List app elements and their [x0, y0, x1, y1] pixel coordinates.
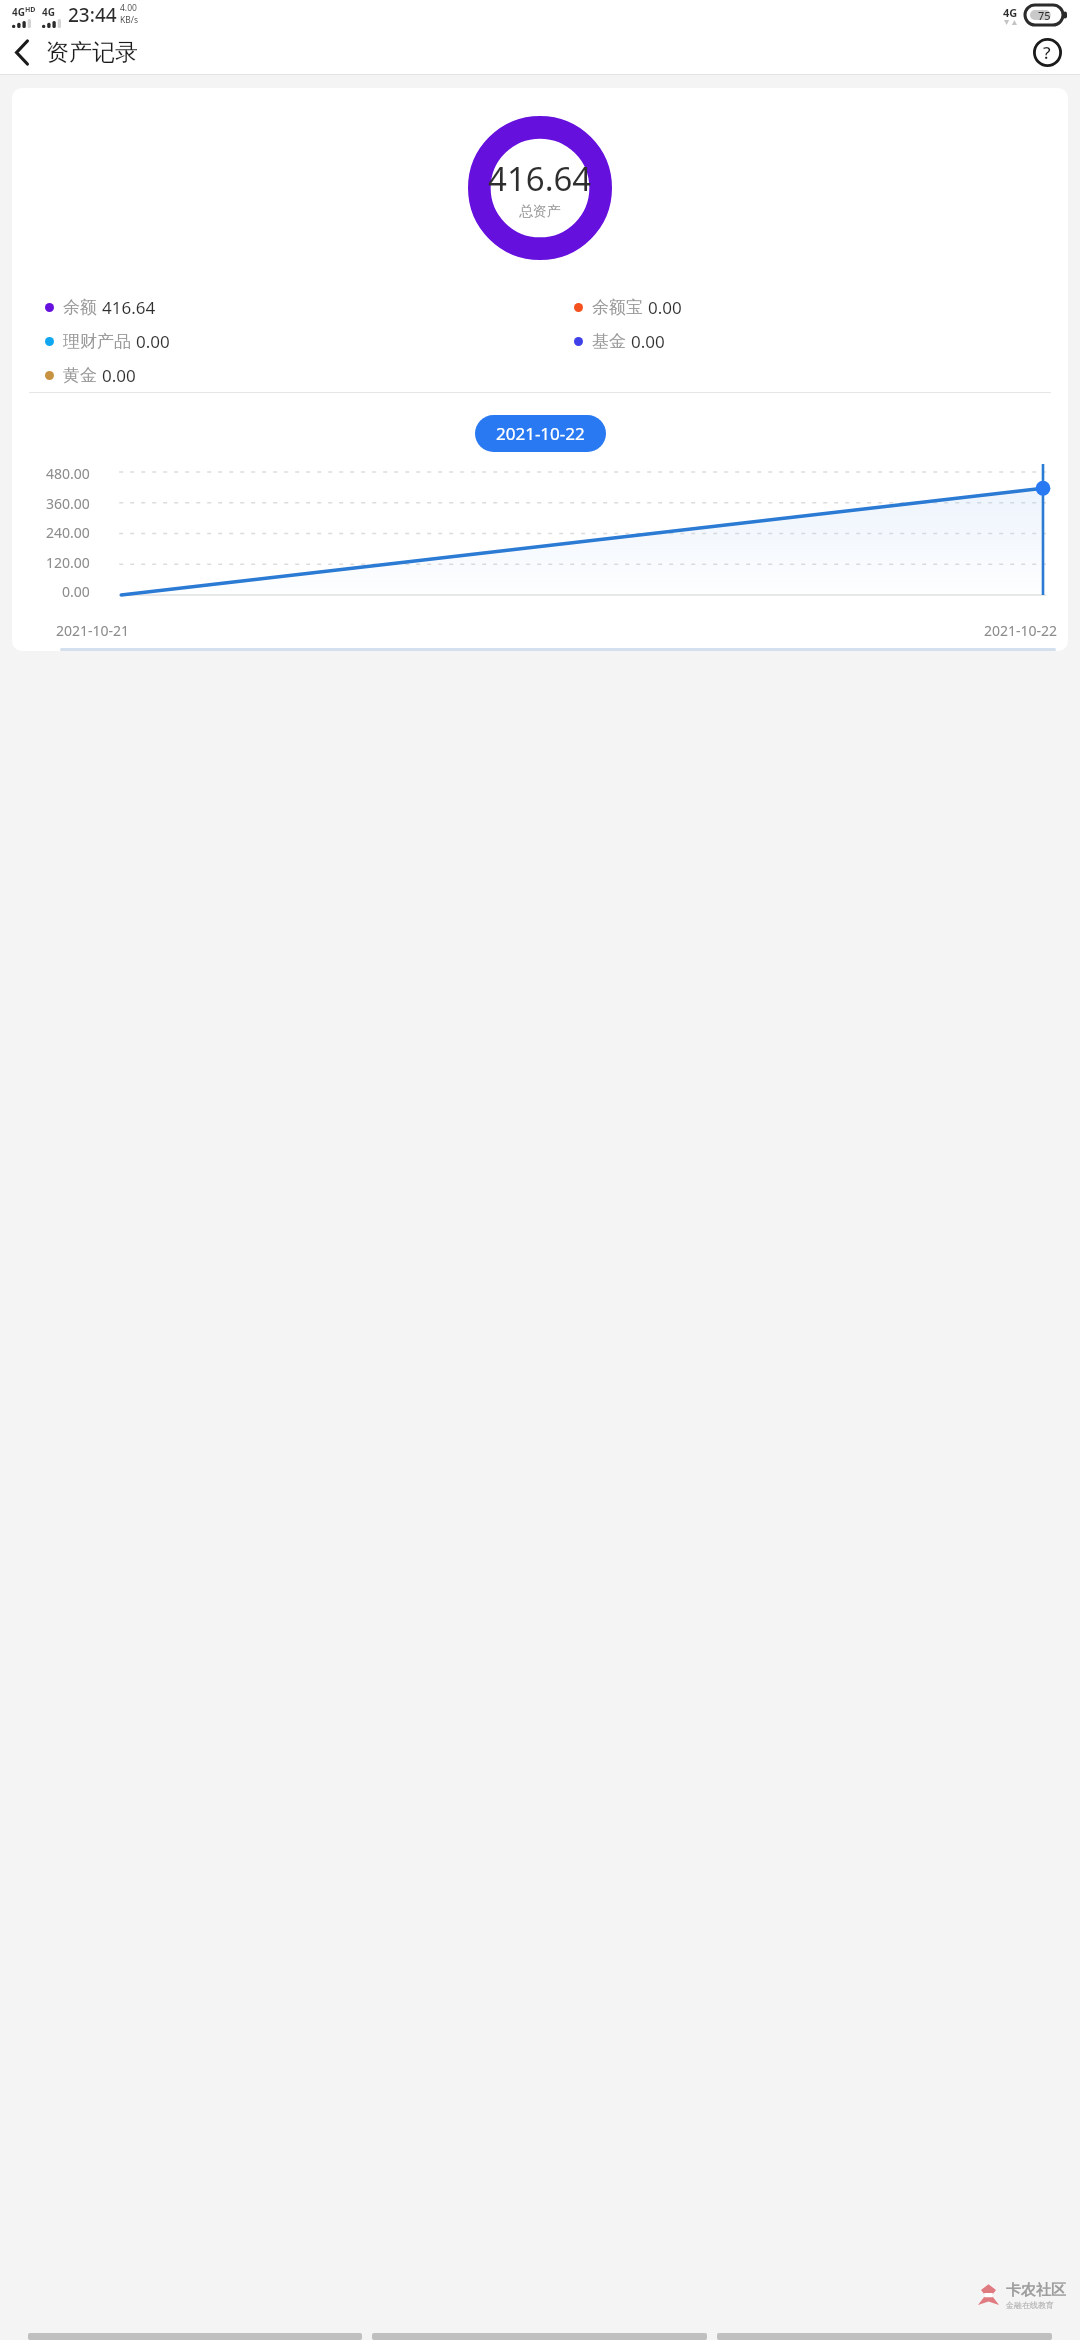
staticText: 0.00: [102, 364, 136, 387]
staticText: 总资产: [519, 203, 561, 221]
staticText: 4G: [12, 5, 25, 19]
button[interactable]: 基金: [574, 330, 665, 353]
staticText: 卡农社区: [1006, 2281, 1066, 2300]
staticText: 4.00: [120, 2, 137, 14]
staticText: 2021-10-22: [496, 422, 585, 445]
button[interactable]: 理财产品: [45, 330, 170, 353]
staticText: 0.00: [62, 582, 90, 601]
staticText: 360.00: [46, 494, 90, 513]
staticText: 480.00: [46, 464, 90, 483]
staticText: 2021-10-22: [984, 621, 1058, 640]
staticText: 4G: [1003, 5, 1018, 20]
button[interactable]: Back: [0, 30, 44, 74]
staticText: ?: [1043, 41, 1051, 64]
button[interactable]: 余额宝: [574, 296, 682, 319]
button[interactable]: 余额: [45, 296, 156, 319]
staticText: 75: [1038, 8, 1051, 23]
staticText: 416.64: [102, 296, 156, 319]
staticText: 2021-10-21: [56, 621, 130, 640]
button[interactable]: 2021-10-22: [475, 415, 606, 452]
staticText: KB/s: [120, 14, 139, 26]
staticText: 理财产品: [63, 331, 131, 352]
staticText: 4G: [42, 5, 55, 19]
staticText: 0.00: [136, 330, 170, 353]
button[interactable]: Help: [1026, 31, 1068, 73]
staticText: 基金: [592, 331, 626, 352]
staticText: HD: [25, 5, 36, 15]
staticText: 23:44: [68, 2, 117, 28]
staticText: 余额宝: [592, 297, 643, 318]
staticText: 黄金: [63, 365, 97, 386]
button[interactable]: 黄金: [45, 364, 136, 387]
staticText: 416.64: [488, 156, 592, 201]
staticText: 0.00: [631, 330, 665, 353]
staticText: 240.00: [46, 523, 90, 542]
staticText: 余额: [63, 297, 97, 318]
staticText: 资产记录: [46, 38, 138, 67]
staticText: 金融在线教育: [1006, 2300, 1054, 2310]
staticText: 120.00: [46, 553, 90, 572]
staticText: 0.00: [648, 296, 682, 319]
